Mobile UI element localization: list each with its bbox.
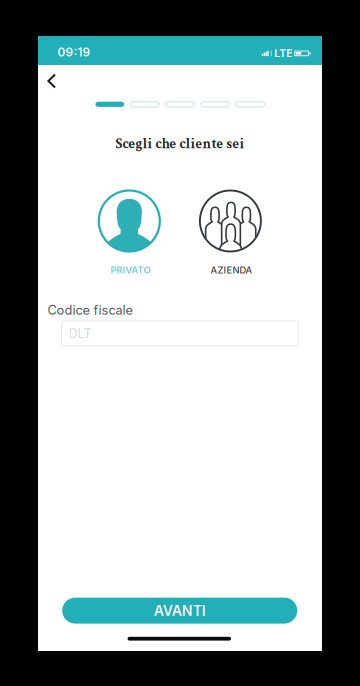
- staticText: AVANTI: [154, 602, 206, 619]
- staticText: PRIVATO: [111, 264, 151, 276]
- button[interactable]: DLT: [61, 321, 298, 346]
- staticText: DLT: [68, 326, 91, 341]
- staticText: Codice fiscale: [47, 302, 132, 318]
- button[interactable]: Privato: [96, 187, 163, 254]
- button[interactable]: [198, 188, 263, 253]
- staticText: LTE: [274, 47, 292, 60]
- staticText: 09:19: [57, 45, 90, 59]
- staticText: AZIENDA: [210, 264, 252, 276]
- button[interactable]: Back: [37, 66, 67, 96]
- button[interactable]: AVANTI: [62, 598, 297, 624]
- staticText: Scegli che cliente sei: [115, 134, 244, 153]
- button[interactable]: AZIENDA: [186, 260, 276, 280]
- button[interactable]: PRIVATO: [86, 260, 176, 280]
